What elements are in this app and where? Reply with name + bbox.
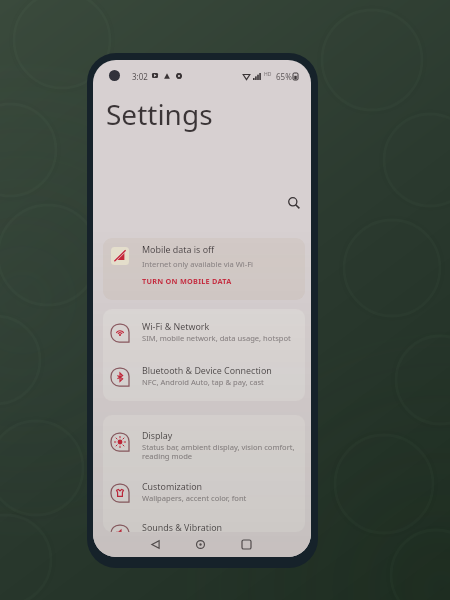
staticText: NFC, Android Auto, tap & pay, cast xyxy=(142,377,264,387)
button[interactable]: Customization xyxy=(103,471,305,515)
staticText: Settings xyxy=(106,95,213,133)
staticText: Wi-Fi & Network xyxy=(142,320,210,332)
staticText: Wallpapers, accent color, font xyxy=(142,493,247,503)
button[interactable]: Bluetooth & Device Connection xyxy=(103,355,305,399)
staticText: TURN ON MOBILE DATA xyxy=(142,276,232,286)
staticText: reading mode xyxy=(142,451,193,461)
button[interactable]: Sounds & Vibration xyxy=(103,512,305,532)
staticText: Display xyxy=(142,429,173,441)
button[interactable]: Mobile data is off xyxy=(103,238,305,300)
staticText: 65% xyxy=(276,71,292,80)
staticText: Internet only available via Wi-Fi xyxy=(142,259,254,269)
staticText: Mobile data is off xyxy=(142,243,215,255)
button[interactable]: Display xyxy=(103,420,305,472)
button[interactable]: Home xyxy=(189,533,211,555)
staticText: SIM, mobile network, data usage, hotspot xyxy=(142,333,291,343)
button[interactable]: Recents xyxy=(235,533,257,555)
staticText: HD xyxy=(264,71,272,78)
staticText: 3:02 xyxy=(132,71,148,80)
staticText: Bluetooth & Device Connection xyxy=(142,364,272,376)
button[interactable]: Wi-Fi & Network xyxy=(103,311,305,355)
button[interactable]: Back xyxy=(144,533,166,555)
staticText: Customization xyxy=(142,480,203,492)
button[interactable]: Search xyxy=(282,191,305,214)
staticText: Status bar, ambient display, vision comf… xyxy=(142,442,295,452)
staticText: Sounds & Vibration xyxy=(142,521,223,532)
